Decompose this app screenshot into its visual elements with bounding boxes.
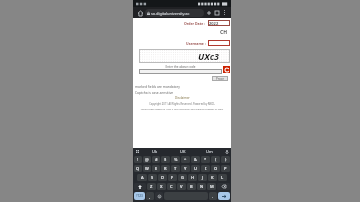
button[interactable]: Emoji	[155, 192, 163, 200]
staticText: E	[155, 166, 158, 171]
button[interactable]: O	[211, 165, 220, 172]
button[interactable]	[208, 40, 230, 46]
button[interactable]: Voice input	[223, 148, 230, 155]
staticText: L	[221, 175, 224, 180]
staticText: H	[191, 175, 194, 180]
button[interactable]: A	[137, 174, 147, 181]
button[interactable]: $	[161, 156, 170, 163]
staticText: F	[171, 175, 174, 180]
button[interactable]: E	[152, 165, 160, 172]
staticText: C	[170, 184, 173, 189]
staticText: Y	[184, 166, 187, 171]
staticText: CH	[220, 29, 228, 36]
button[interactable]: (	[211, 156, 220, 163]
button[interactable]: Um	[196, 148, 223, 155]
button[interactable]: ?123	[134, 192, 145, 200]
staticText: O	[214, 166, 218, 171]
button[interactable]: !	[134, 156, 142, 163]
button[interactable]: T	[171, 165, 180, 172]
button[interactable]: )	[221, 156, 230, 163]
button[interactable]: Proce	[212, 76, 228, 81]
button[interactable]: Y	[181, 165, 190, 172]
button[interactable]: M	[207, 183, 216, 190]
staticText: ?123	[136, 194, 143, 198]
button[interactable]: W	[143, 165, 151, 172]
button[interactable]: Enter	[218, 192, 230, 200]
staticText: Enter the above code	[139, 65, 222, 69]
button[interactable]: Uk	[141, 148, 169, 155]
staticText: J	[202, 175, 204, 180]
staticText: &	[194, 157, 197, 162]
button[interactable]: K	[208, 174, 217, 181]
staticText: X	[160, 184, 163, 189]
button[interactable]: &	[191, 156, 200, 163]
button[interactable]: Refresh captcha	[223, 66, 230, 73]
button[interactable]: ,	[146, 192, 154, 200]
staticText: UK	[180, 149, 186, 154]
button[interactable]: .	[209, 192, 217, 200]
staticText: Uk	[152, 149, 158, 154]
button[interactable]: Shift	[134, 183, 146, 190]
button[interactable]: H	[188, 174, 197, 181]
button[interactable]: New tab	[205, 9, 213, 17]
button[interactable]: *	[201, 156, 210, 163]
staticText: 2022	[208, 21, 219, 26]
button[interactable]: F	[168, 174, 177, 181]
button[interactable]: @	[143, 156, 151, 163]
button[interactable]: %	[171, 156, 180, 163]
button[interactable]: C	[167, 183, 176, 190]
staticText: !	[137, 157, 139, 162]
button[interactable]	[139, 69, 222, 74]
button[interactable]: Backspace	[217, 183, 230, 190]
button[interactable]: I	[201, 165, 210, 172]
button[interactable]: UK	[169, 148, 196, 155]
staticText: D	[161, 175, 164, 180]
staticText: Order Date :	[184, 21, 206, 26]
staticText: P	[224, 166, 227, 171]
staticText: Proce	[216, 77, 224, 81]
staticText: K	[211, 175, 214, 180]
staticText: M	[210, 184, 214, 189]
staticText: Copyright 2011 All Rights Reserved. Powe…	[133, 102, 231, 106]
button[interactable]: Tabs	[213, 9, 221, 17]
button[interactable]: Home	[136, 9, 144, 17]
button[interactable]: N	[197, 183, 206, 190]
staticText: @	[145, 157, 149, 162]
staticText: %	[174, 157, 178, 162]
button[interactable]: U	[191, 165, 200, 172]
button[interactable]: B	[187, 183, 196, 190]
button[interactable]: Z	[147, 183, 156, 190]
button[interactable]: J	[198, 174, 207, 181]
button[interactable]: Toolbar	[134, 148, 141, 155]
staticText: B	[190, 184, 193, 189]
button[interactable]: D	[158, 174, 167, 181]
staticText: *	[204, 157, 207, 162]
staticText: V	[180, 184, 183, 189]
staticText: (	[215, 157, 217, 162]
staticText: T	[174, 166, 177, 171]
staticText: .	[212, 194, 214, 199]
button[interactable]: 2022	[208, 20, 230, 26]
staticText: W	[145, 166, 149, 171]
button[interactable]: Menu	[221, 9, 228, 16]
staticText: Disclaimer	[175, 96, 190, 100]
staticText: ,	[149, 194, 151, 199]
button[interactable]: G	[178, 174, 187, 181]
staticText: $	[164, 157, 167, 162]
staticText: Captcha is case-sensitive	[135, 90, 174, 94]
button[interactable]: S	[148, 174, 157, 181]
button[interactable]: V	[177, 183, 186, 190]
button[interactable]: #	[152, 156, 160, 163]
button[interactable]: X	[157, 183, 166, 190]
staticText: ^	[184, 157, 187, 162]
staticText: Um	[206, 149, 213, 154]
button[interactable]: so.digitaluniversity.ac	[145, 9, 204, 17]
button[interactable]: L	[218, 174, 227, 181]
button[interactable]: ^	[181, 156, 190, 163]
button[interactable]: R	[161, 165, 170, 172]
button[interactable]: Q	[134, 165, 142, 172]
staticText: marked fields are mandatory	[135, 84, 180, 88]
button[interactable]: P	[221, 165, 230, 172]
staticText: Q	[136, 166, 140, 171]
